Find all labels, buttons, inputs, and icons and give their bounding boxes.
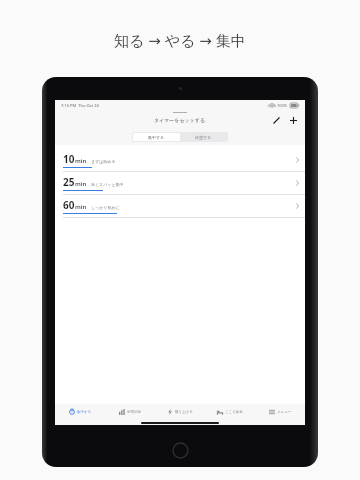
staticText: しっかり長めに: [91, 205, 120, 210]
staticText: min: [75, 203, 87, 211]
staticText: min: [75, 180, 87, 188]
staticText: メニュー: [277, 410, 292, 414]
button[interactable]: 60: [55, 195, 305, 218]
button[interactable]: 取り上げる: [155, 404, 205, 420]
staticText: 知る → やる → 集中: [114, 30, 246, 50]
staticText: 集中する: [148, 135, 165, 140]
staticText: 100%: [277, 103, 288, 108]
button[interactable]: 集中する: [133, 133, 180, 141]
staticText: 10: [63, 152, 75, 166]
button[interactable]: Edit: [270, 114, 283, 127]
staticText: 短くスパッと集中: [91, 182, 124, 187]
button[interactable]: Add timer: [287, 114, 300, 127]
staticText: 休憩する: [195, 135, 212, 140]
staticText: 7:16 PM Thu Oct 24: [61, 103, 99, 108]
staticText: 取り上げる: [175, 410, 193, 414]
staticText: タイマーをセットする: [154, 117, 206, 123]
button[interactable]: メニュー: [255, 404, 305, 420]
button[interactable]: 10: [55, 149, 305, 172]
button[interactable]: こころ休息: [205, 404, 255, 420]
staticText: min: [75, 157, 87, 165]
staticText: こころ休息: [225, 410, 243, 414]
staticText: 60: [63, 198, 75, 212]
staticText: 学習記録: [127, 410, 141, 414]
button[interactable]: 休憩する: [180, 133, 227, 141]
staticText: まずは始める: [91, 159, 116, 164]
button[interactable]: 25: [55, 172, 305, 195]
button[interactable]: 学習記録: [105, 404, 155, 420]
staticText: 集中する: [77, 410, 92, 414]
staticText: 25: [63, 175, 75, 189]
button[interactable]: 集中する: [55, 404, 105, 420]
